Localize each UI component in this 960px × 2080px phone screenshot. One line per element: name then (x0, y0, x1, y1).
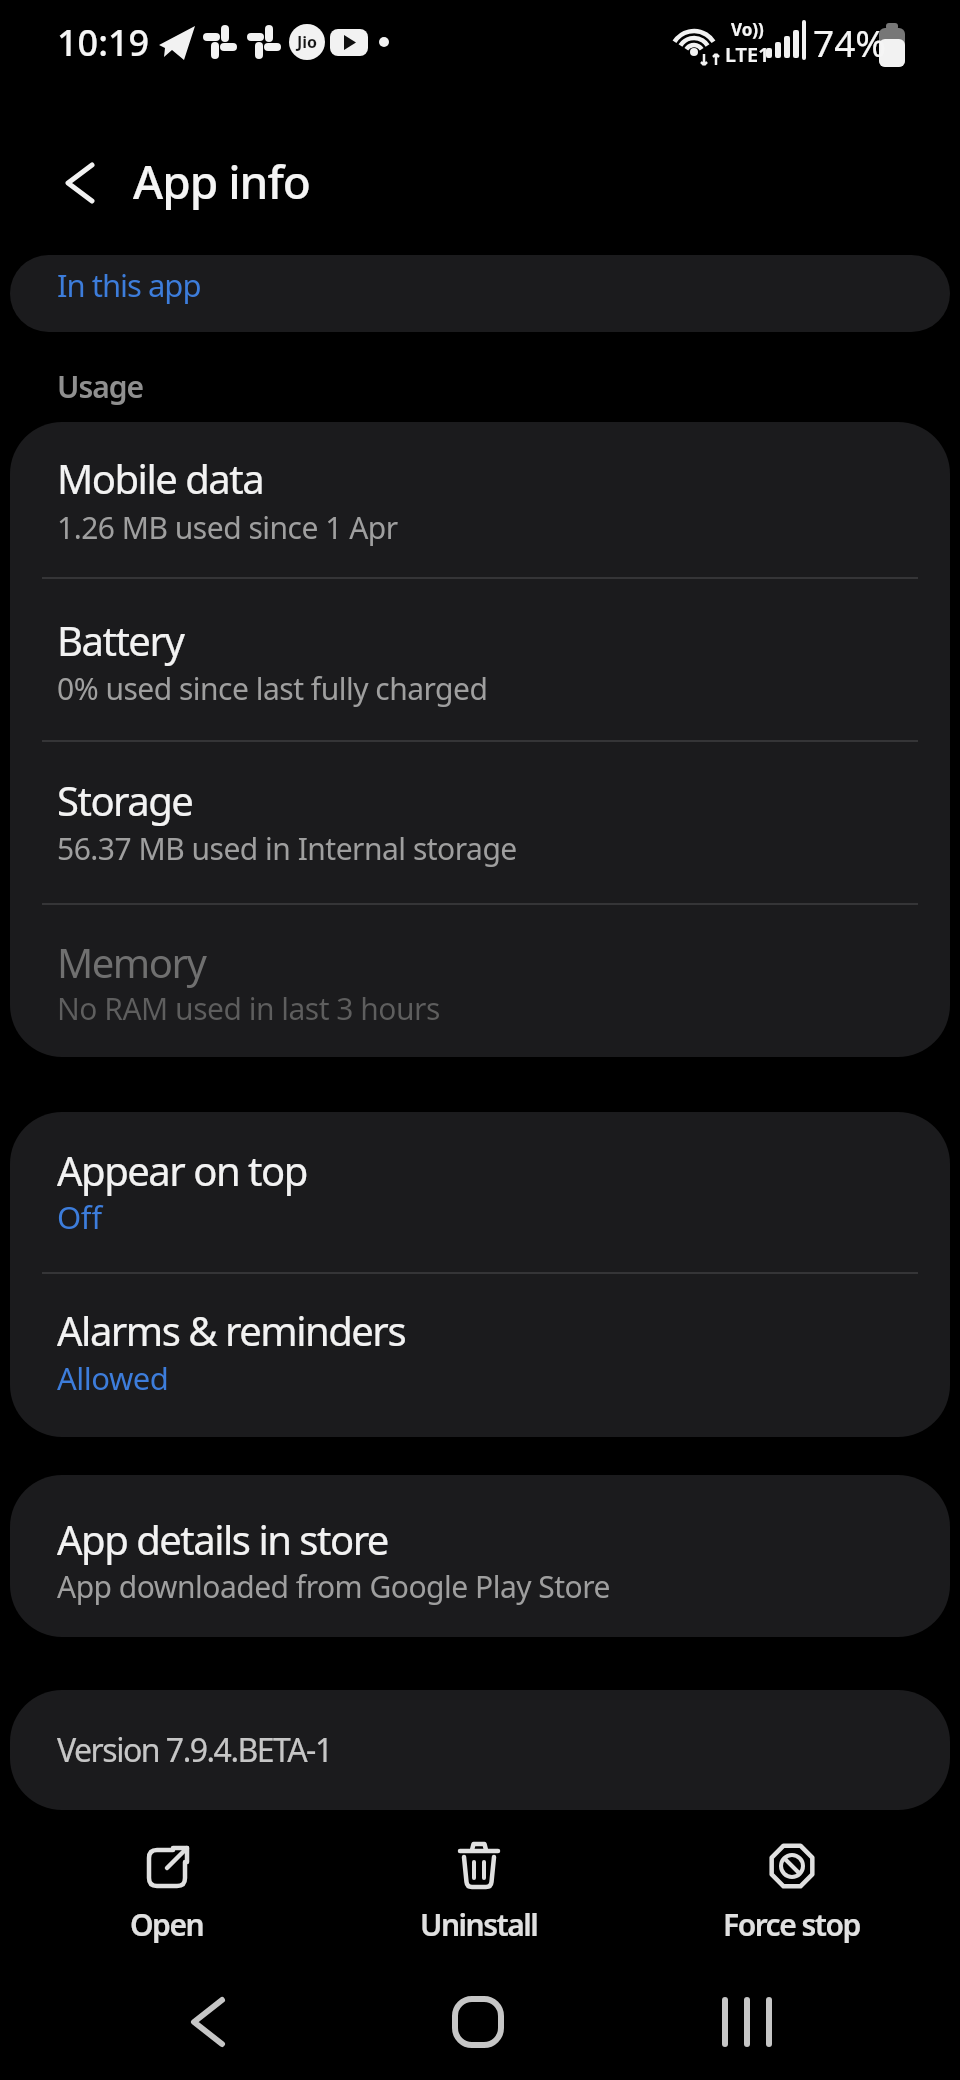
staticText: 74% (813, 17, 887, 67)
staticText: 10:19 (57, 18, 150, 67)
button[interactable]: App details in store (10, 1475, 950, 1637)
button[interactable]: Storage (10, 740, 950, 903)
button[interactable] (687, 1970, 807, 2074)
staticText: Mobile data (57, 451, 264, 505)
staticText: 1.26 MB used since 1 Apr (57, 507, 398, 548)
staticText: Memory (57, 935, 206, 989)
staticText: App info (133, 150, 310, 213)
staticText: App details in store (57, 1512, 388, 1566)
staticText: Version 7.9.4.BETA-1 (57, 1728, 332, 1772)
staticText: No RAM used in last 3 hours (57, 988, 440, 1029)
staticText: 0% used since last fully charged (57, 668, 488, 709)
staticText: Force stop (723, 1904, 860, 1945)
staticText: Allowed (57, 1357, 169, 1399)
staticText: Battery (57, 613, 184, 667)
staticText: Off (57, 1196, 102, 1238)
button[interactable] (418, 1970, 538, 2074)
button[interactable]: Mobile data (10, 422, 950, 577)
button[interactable]: Open (52, 1838, 282, 1962)
button[interactable]: In this app (10, 255, 950, 332)
staticText: Jio (297, 31, 318, 53)
staticText: In this app (57, 264, 201, 306)
button[interactable]: Alarms & reminders (10, 1272, 950, 1437)
button[interactable]: Battery (10, 577, 950, 740)
button[interactable]: Appear on top (10, 1112, 950, 1272)
button[interactable] (36, 145, 112, 221)
button[interactable]: Uninstall (364, 1838, 594, 1962)
staticText: Appear on top (57, 1143, 307, 1197)
button[interactable]: Force stop (676, 1838, 906, 1962)
staticText: LTE1 (725, 41, 770, 68)
staticText: Usage (57, 366, 144, 407)
staticText: Vo)) (731, 18, 764, 41)
staticText: Open (130, 1904, 204, 1945)
staticText: App downloaded from Google Play Store (57, 1566, 610, 1607)
button[interactable] (148, 1970, 268, 2074)
staticText: Uninstall (420, 1904, 538, 1945)
staticText: 56.37 MB used in Internal storage (57, 828, 517, 869)
staticText: Storage (57, 773, 193, 827)
staticText: Alarms & reminders (57, 1303, 406, 1357)
